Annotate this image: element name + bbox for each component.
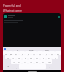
- button[interactable]: p: [55, 51, 61, 55]
- staticText: I'm: [45, 48, 49, 51]
- button[interactable]: d: [16, 55, 22, 59]
- button[interactable]: o: [49, 51, 55, 55]
- button[interactable]: x: [16, 59, 22, 64]
- button[interactable]: ?1: [3, 64, 13, 69]
- button[interactable]: h: [34, 55, 40, 59]
- staticText: m: [48, 60, 51, 63]
- button[interactable]: i: [43, 51, 49, 55]
- button[interactable]: e: [13, 51, 19, 55]
- staticText: l: [55, 56, 56, 59]
- staticText: u: [39, 52, 41, 55]
- button[interactable]: l: [52, 55, 58, 59]
- staticText: d: [18, 56, 20, 59]
- staticText: x: [18, 60, 20, 63]
- staticText: f: [25, 56, 26, 59]
- staticText: y: [33, 52, 35, 55]
- staticText: b: [36, 60, 38, 63]
- staticText: r: [22, 52, 23, 55]
- button[interactable]: t: [25, 51, 31, 55]
- button[interactable]: v: [28, 59, 34, 64]
- staticText: e: [15, 52, 17, 55]
- button[interactable]: g: [28, 55, 34, 59]
- button[interactable]: Menu: [4, 15, 7, 18]
- button[interactable]: b: [34, 59, 40, 64]
- staticText: q: [5, 52, 7, 55]
- staticText: .: [49, 65, 50, 68]
- staticText: I: [17, 48, 18, 51]
- button[interactable]: k: [46, 55, 52, 59]
- staticText: g: [30, 56, 32, 59]
- staticText: p: [57, 52, 59, 55]
- staticText: k: [48, 56, 50, 59]
- button[interactable]: n: [40, 59, 46, 64]
- staticText: s: [12, 56, 14, 59]
- button[interactable]: Search: [4, 48, 6, 50]
- staticText: ?1: [7, 65, 10, 68]
- button[interactable]: m: [46, 59, 52, 64]
- staticText: Powerful and: [3, 4, 21, 8]
- button[interactable]: z: [11, 59, 16, 64]
- staticText: i: [46, 52, 47, 55]
- staticText: h: [36, 56, 38, 59]
- button[interactable]: w: [8, 51, 13, 55]
- staticText: a: [7, 56, 9, 59]
- staticText: Whatnot were: [3, 9, 22, 13]
- staticText: j: [43, 56, 44, 59]
- button[interactable]: s: [10, 55, 16, 59]
- button[interactable]: y: [31, 51, 37, 55]
- button[interactable]: c: [22, 59, 28, 64]
- staticText: o: [51, 52, 53, 55]
- button[interactable]: a: [5, 55, 10, 59]
- staticText: The: [29, 48, 34, 51]
- staticText: z: [13, 60, 15, 63]
- button[interactable]: u: [37, 51, 43, 55]
- staticText: t: [28, 52, 29, 55]
- staticText: c: [24, 60, 26, 63]
- button[interactable]: j: [40, 55, 46, 59]
- button[interactable]: q: [3, 51, 8, 55]
- staticText: n: [42, 60, 44, 63]
- button[interactable]: f: [22, 55, 28, 59]
- staticText: v: [30, 60, 32, 63]
- button[interactable]: r: [19, 51, 25, 55]
- staticText: w: [10, 52, 12, 55]
